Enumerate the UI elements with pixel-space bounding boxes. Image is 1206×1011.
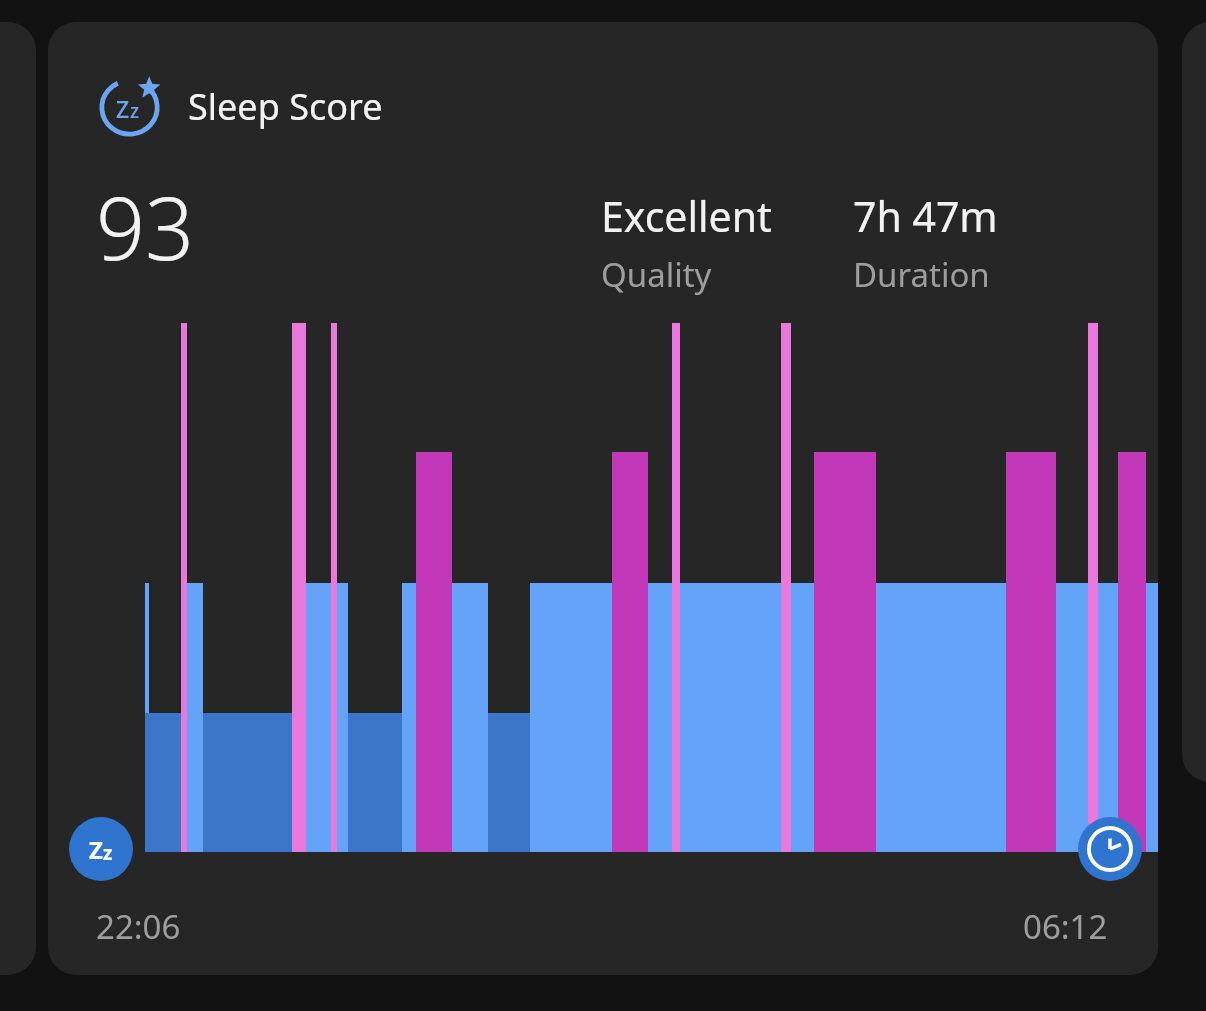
button[interactable]: Z <box>48 22 1158 975</box>
staticText: Quality <box>601 252 712 297</box>
staticText: 7h 47m <box>853 188 998 244</box>
staticText: Z <box>89 833 103 866</box>
staticText: 06:12 <box>1023 904 1108 949</box>
staticText: Excellent <box>601 188 772 244</box>
staticText: z <box>130 98 140 124</box>
staticText: Sleep Score <box>188 82 383 131</box>
staticText: Z <box>116 93 130 124</box>
button[interactable]: Wake time <box>1078 817 1142 881</box>
staticText: 22:06 <box>96 904 181 949</box>
button[interactable]: Bedtime <box>69 817 133 881</box>
staticText: 93 <box>96 168 195 285</box>
staticText: Duration <box>853 252 990 297</box>
staticText: z <box>103 840 113 866</box>
